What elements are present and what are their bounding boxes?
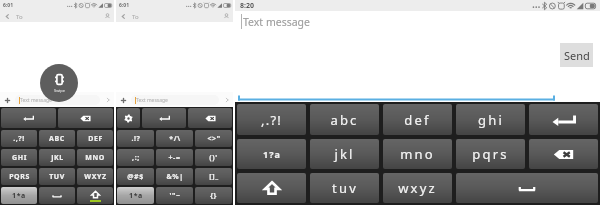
button[interactable]: WXYZ <box>77 168 113 185</box>
button[interactable]: pqrs <box>456 139 525 169</box>
staticText: */\ <box>169 134 181 144</box>
button[interactable]: &%| <box>156 168 193 185</box>
button[interactable]: Swipe to watch <box>40 64 78 102</box>
staticText: ,.?! <box>261 111 282 129</box>
button[interactable]: Space <box>39 187 75 204</box>
button[interactable]: ABC <box>39 130 75 147</box>
button[interactable]: +-= <box>156 149 193 166</box>
staticText: 1?a <box>263 148 281 160</box>
staticText: GHI <box>12 153 27 163</box>
staticText: Text message <box>20 97 52 104</box>
staticText: tuv <box>332 179 358 197</box>
button[interactable]: mno <box>383 139 452 169</box>
button[interactable]: def <box>383 104 452 135</box>
button[interactable]: Settings <box>117 108 140 128</box>
button[interactable]: Contacts <box>219 11 233 22</box>
staticText: 6:01 <box>119 2 129 9</box>
staticText: MNO <box>85 153 105 163</box>
button[interactable]: JKL <box>39 149 75 166</box>
staticText: Swipe <box>54 88 66 93</box>
other: Enter <box>159 115 170 121</box>
button[interactable]: Space <box>456 173 598 203</box>
button[interactable]: jkl <box>310 139 379 169</box>
button[interactable]: PQRS <box>1 168 37 185</box>
button[interactable]: ghi <box>456 104 525 135</box>
button[interactable]: 1?a <box>237 139 306 169</box>
button[interactable]: Back <box>0 11 14 22</box>
button[interactable]: 1*a <box>117 187 154 204</box>
staticText: abc <box>330 111 359 129</box>
staticText: @#$ <box>127 172 144 182</box>
other: Settings <box>124 114 133 123</box>
staticText: PQRS <box>9 172 30 182</box>
button[interactable]: abc <box>310 104 379 135</box>
button[interactable]: .,?! <box>1 130 37 147</box>
staticText: def <box>404 111 431 129</box>
other: Backspace <box>80 115 91 122</box>
staticText: Send <box>564 48 590 63</box>
staticText: pqrs <box>472 145 509 163</box>
button[interactable]: Send <box>101 93 114 106</box>
other: Enter <box>23 115 34 121</box>
other: Space <box>52 194 62 198</box>
button[interactable]: Enter <box>1 108 56 128</box>
staticText: JKL <box>51 153 64 163</box>
staticText: To <box>132 13 139 21</box>
button[interactable]: Text message <box>15 95 100 105</box>
button[interactable]: Enter <box>142 108 186 128</box>
button[interactable]: 1*a <box>1 187 37 204</box>
staticText: mno <box>400 145 435 163</box>
button[interactable]: '"~ <box>156 187 193 204</box>
button[interactable]: Backspace <box>58 108 113 128</box>
button[interactable]: <>" <box>195 130 232 147</box>
button[interactable]: tuv <box>310 173 379 203</box>
button[interactable]: Shift <box>237 173 306 203</box>
staticText: .,?! <box>13 134 25 144</box>
other: Backspace <box>553 149 574 160</box>
button[interactable]: Contacts <box>100 11 114 22</box>
button[interactable]: Text message <box>131 95 219 105</box>
staticText: ABC <box>49 134 65 144</box>
staticText: Text message <box>136 97 168 104</box>
button[interactable]: Send <box>560 43 593 67</box>
button[interactable]: */\ <box>156 130 193 147</box>
staticText: 1*a <box>12 191 26 201</box>
button[interactable]: Send <box>220 93 233 106</box>
other: Backspace <box>205 115 216 122</box>
staticText: DEF <box>88 134 103 144</box>
staticText: Text message <box>243 15 310 29</box>
staticText: To <box>16 13 23 21</box>
other: Enter <box>552 114 576 126</box>
button[interactable]: Backspace <box>188 108 232 128</box>
button[interactable]: Shift <box>77 187 113 204</box>
staticText: ,:; <box>132 153 140 163</box>
button[interactable]: []_ <box>195 168 232 185</box>
button[interactable]: ,.?! <box>237 104 306 135</box>
button[interactable]: {} <box>195 187 232 204</box>
staticText: 6:01 <box>3 2 13 9</box>
button[interactable]: Add attachment <box>116 93 130 107</box>
other: Space <box>518 185 536 192</box>
button[interactable]: @#$ <box>117 168 154 185</box>
staticText: &%| <box>166 172 184 182</box>
button[interactable]: Add attachment <box>0 93 14 107</box>
staticText: 8:20 <box>240 1 254 11</box>
staticText: wxyz <box>398 179 437 197</box>
staticText: []_ <box>209 172 219 182</box>
staticText: .!? <box>131 134 141 144</box>
button[interactable]: Back <box>116 11 130 22</box>
button[interactable]: TUV <box>39 168 75 185</box>
button[interactable]: GHI <box>1 149 37 166</box>
staticText: ()' <box>209 153 218 163</box>
button[interactable]: DEF <box>77 130 113 147</box>
button[interactable]: Enter <box>529 104 598 135</box>
button[interactable]: Backspace <box>529 139 598 169</box>
button[interactable]: MNO <box>77 149 113 166</box>
button[interactable]: ,:; <box>117 149 154 166</box>
button[interactable]: wxyz <box>383 173 452 203</box>
button[interactable]: .!? <box>117 130 154 147</box>
staticText: +-= <box>168 153 181 163</box>
button[interactable]: ()' <box>195 149 232 166</box>
other: Shift <box>91 190 100 199</box>
staticText: WXYZ <box>84 172 107 182</box>
